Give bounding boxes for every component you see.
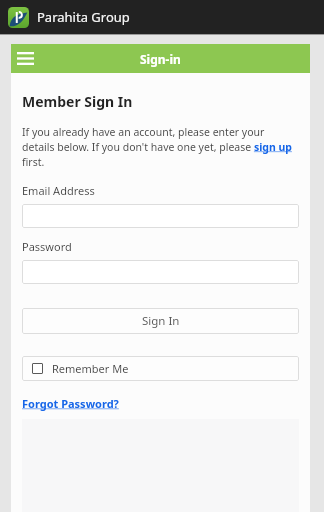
button[interactable]: Remember Me (22, 356, 299, 381)
staticText: Email Address (22, 183, 95, 198)
staticText: Parahita Group (37, 8, 130, 26)
button[interactable] (22, 260, 299, 284)
staticText: Password (22, 239, 72, 254)
staticText: Forgot Password? (22, 396, 119, 411)
staticText: Member Sign In (22, 92, 133, 111)
other: Parahita Group logo (8, 7, 29, 28)
button[interactable]: Sign In (22, 308, 299, 334)
button[interactable] (22, 204, 299, 228)
staticText: If you already have an account, please e… (22, 125, 299, 169)
button[interactable]: Forgot Password? (22, 396, 119, 411)
staticText: Sign-in (140, 51, 181, 67)
staticText: Remember Me (52, 361, 129, 376)
staticText: Sign In (142, 313, 180, 329)
button[interactable]: Menu (11, 44, 40, 73)
